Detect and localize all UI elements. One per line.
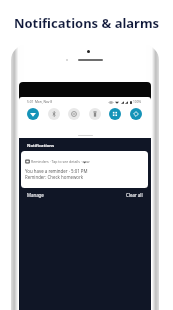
button[interactable]: Do not disturb: [68, 108, 80, 120]
button[interactable]: Auto rotate: [130, 108, 142, 120]
button[interactable]: Clear all: [126, 192, 143, 198]
button[interactable]: Screen cast: [109, 108, 121, 120]
staticText: Notifications: [27, 143, 55, 149]
staticText: 100%: [133, 100, 142, 104]
button[interactable]: Manage: [27, 192, 44, 198]
staticText: Notifications & alarms: [0, 14, 173, 32]
staticText: You have a reminder · 5:01 PM: [25, 168, 88, 174]
staticText: 5:01 Mon, Nov 8: [27, 100, 53, 104]
staticText: Reminder: Check homework: [25, 174, 84, 180]
button[interactable]: Flashlight: [89, 108, 101, 120]
staticText: Reminders · Tap to see details · now: [31, 159, 90, 164]
button[interactable]: Wi-Fi: [27, 108, 39, 120]
button[interactable]: Reminders · Tap to see details · now: [21, 151, 148, 188]
button[interactable]: Bluetooth: [48, 108, 60, 120]
